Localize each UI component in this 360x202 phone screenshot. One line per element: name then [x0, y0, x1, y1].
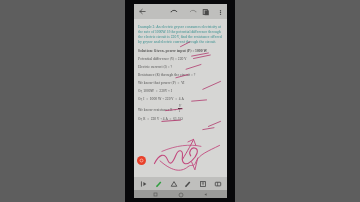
- button[interactable]: Select: [138, 178, 149, 189]
- button[interactable]: Add: [137, 156, 146, 165]
- button[interactable]: Back: [202, 191, 209, 198]
- button[interactable]: Back: [137, 6, 148, 17]
- button[interactable]: Highlighter: [182, 178, 193, 189]
- button[interactable]: Recents: [152, 191, 159, 198]
- staticText: Electric current (I) = ?: [138, 64, 173, 68]
- staticText: I: [179, 109, 181, 113]
- staticText: We know that power (P) = VI: [138, 80, 185, 84]
- button[interactable]: Pages: [201, 7, 211, 17]
- button[interactable]: More options: [216, 8, 225, 17]
- button[interactable]: Pen: [153, 178, 164, 189]
- button[interactable]: Eraser: [212, 178, 223, 189]
- button[interactable]: Text: [197, 178, 208, 189]
- button[interactable]: Undo: [169, 7, 179, 17]
- staticText: Solution: Given, power input (P) = 1000 …: [138, 48, 207, 52]
- button[interactable]: Redo: [188, 7, 198, 17]
- staticText: Or, R = 220 V ÷ 4 A = 61.3 Ω: [138, 116, 183, 120]
- button[interactable]: Shapes: [168, 178, 179, 189]
- staticText: Potential difference (V) = 220 V: [138, 56, 187, 60]
- staticText: Or, I = 1000 W ÷ 220 V = 4 A: [138, 96, 184, 100]
- staticText: Resistance (R) through the circuit = ?: [138, 72, 196, 76]
- button[interactable]: Home: [177, 191, 184, 198]
- staticText: Example 2: An electric geyser consumes e…: [138, 24, 223, 44]
- staticText: We know resistance R =: [138, 107, 178, 111]
- staticText: V: [179, 104, 182, 108]
- staticText: Or, 1000W = 220V × I: [138, 88, 172, 92]
